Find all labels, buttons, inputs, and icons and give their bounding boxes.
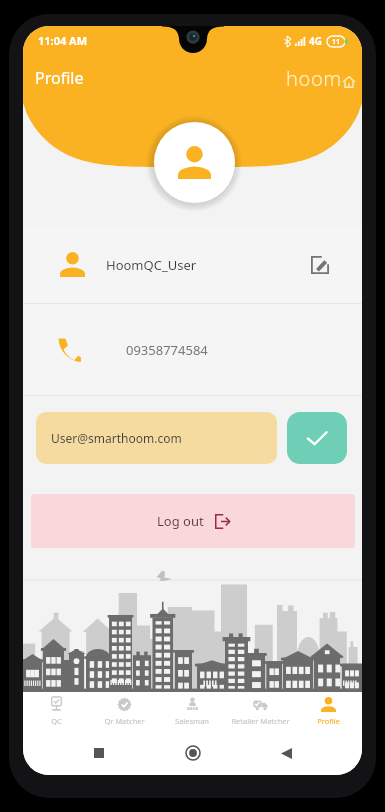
staticText: User@smarthoom.com [51,430,182,446]
staticText: QC [51,716,62,726]
button[interactable]: 09358774584 [23,304,362,395]
button[interactable]: Salesman [158,692,226,730]
staticText: Profile [35,67,84,89]
button[interactable]: Recent apps [82,736,116,770]
staticText: 11 [332,37,341,47]
button[interactable]: Profile [294,692,362,730]
staticText: Profile [317,716,340,726]
staticText: 4G [309,34,322,48]
button[interactable]: Edit profile [305,250,335,280]
button[interactable]: Qr Matcher [90,692,158,730]
button[interactable]: Retailer Matcher [226,692,294,730]
staticText: Log out [157,512,204,530]
button[interactable]: QC [23,692,90,730]
button[interactable]: Log out [31,494,355,548]
staticText: Salesman [175,716,209,726]
staticText: Retailer Matcher [231,716,290,726]
button[interactable]: HoomQC_User [23,226,362,303]
staticText: Qr Matcher [104,716,145,726]
staticText: HoomQC_User [106,256,197,274]
staticText: 11:04 AM [38,33,88,48]
button[interactable]: User@smarthoom.com [36,412,277,464]
button[interactable]: Back [269,736,303,770]
staticText: hoom [286,65,342,92]
staticText: 09358774584 [126,341,208,359]
button[interactable]: Home [176,736,210,770]
button[interactable]: Confirm email [287,412,347,464]
